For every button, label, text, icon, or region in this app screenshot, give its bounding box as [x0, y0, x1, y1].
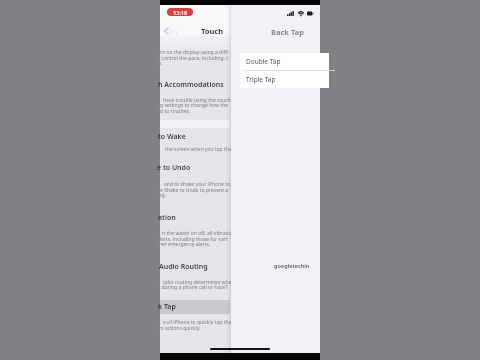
staticText: Touch — [201, 26, 224, 36]
staticText: he Shake to Undo to prevent acciden — [157, 187, 228, 194]
staticText: ther emergency alerts. — [157, 241, 211, 248]
button[interactable]: Double Tap — [240, 53, 329, 70]
staticText: nd to touches. — [157, 108, 191, 115]
staticText: o control the pace, including, to access… — [157, 55, 228, 62]
staticText: Back Tap — [271, 27, 304, 37]
staticText: 13:18 — [173, 9, 188, 16]
staticText: ing. — [157, 192, 166, 199]
staticText: h Accommodations — [158, 80, 224, 90]
staticText: lity — [169, 27, 179, 37]
staticText: the screen when you tap the dis — [165, 146, 236, 153]
staticText: to Wake — [158, 132, 186, 142]
staticText: n during a phone call or FaceTi — [157, 284, 228, 291]
staticText: googletechin — [274, 262, 310, 269]
button[interactable]: Triple Tap — [240, 71, 329, 88]
staticText: le. — [157, 60, 163, 67]
button[interactable]: k Tap — [160, 300, 230, 314]
staticText: e to Undo — [157, 163, 191, 173]
staticText: Audio Routing — [159, 262, 208, 272]
staticText: alerts, including those for earth — [157, 236, 228, 243]
staticText: urn on the display using a different con… — [157, 49, 228, 56]
staticText: udio routing determines where au — [163, 279, 234, 286]
staticText: n the watch on off, all vibration on yo — [162, 230, 233, 237]
staticText: Triple Tap — [246, 75, 276, 84]
staticText: Double Tap — [246, 57, 281, 66]
staticText: and to shake your iPhone to un — [164, 181, 235, 188]
button[interactable]: Back to Accessibility — [161, 23, 175, 37]
staticText: ation — [158, 213, 176, 223]
staticText: rm actions quickly. — [157, 325, 201, 332]
staticText: ng settings to change how the scre — [157, 102, 228, 109]
staticText: have trouble using the touch scre — [163, 97, 234, 104]
staticText: e of iPhone to quickly tap the back of y… — [163, 319, 234, 326]
staticText: k Tap — [158, 302, 176, 312]
